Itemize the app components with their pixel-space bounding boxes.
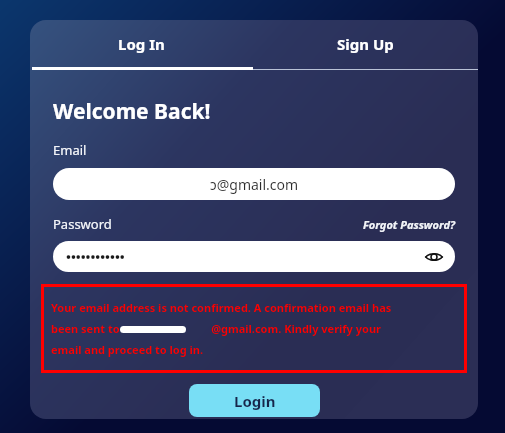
staticText: Sign Up [337, 34, 394, 54]
staticText: Login [234, 391, 276, 411]
staticText: Log In [118, 34, 165, 54]
staticText: Your email address is not confirmed. A c… [51, 300, 392, 315]
staticText: ɔ@gmail.com [210, 175, 299, 194]
staticText: Forgot Password? [363, 217, 455, 232]
staticText: Welcome Back! [53, 97, 211, 126]
button[interactable]: Show password [423, 246, 445, 268]
button[interactable]: Sign Up [253, 20, 478, 67]
staticText: Password [53, 215, 112, 233]
button[interactable]: ɔ@gmail.com [53, 168, 455, 200]
button[interactable]: Log In [30, 20, 253, 67]
staticText: Email [53, 141, 87, 159]
button[interactable]: •••••••••••• [53, 241, 455, 272]
button[interactable]: Forgot Password? [363, 217, 455, 232]
staticText: •••••••••••• [66, 248, 125, 266]
staticText: been sent to @gmail.com. Kindly verify y… [51, 321, 381, 336]
staticText: email and proceed to log in. [51, 342, 204, 357]
button[interactable]: Login [189, 384, 320, 417]
